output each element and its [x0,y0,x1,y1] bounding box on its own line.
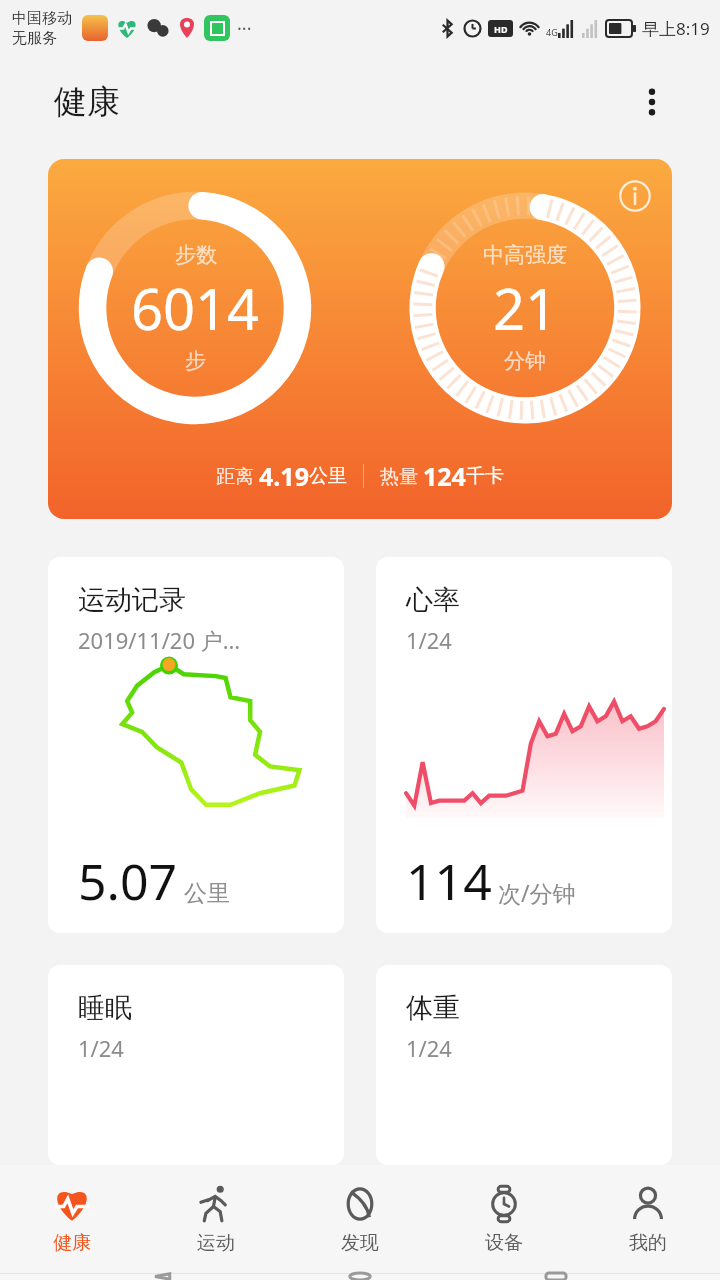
staticText: 中国移动 [12,9,72,28]
staticText: 5.07 [78,847,178,915]
staticText: 1/24 [406,1033,452,1063]
staticText: 早上8:19 [642,17,710,40]
button[interactable]: 设备 [432,1165,576,1273]
button[interactable]: 睡眠 [48,965,344,1165]
staticText: 千卡 [466,464,504,488]
staticText: 4G [546,26,558,38]
button[interactable]: 运动记录 [48,557,344,933]
staticText: 2019/11/20 户… [78,625,241,655]
staticText: 睡眠 [78,991,132,1025]
button[interactable]: 健康 [0,1165,144,1273]
staticText: 健康 [53,1231,91,1255]
staticText: 1/24 [78,1033,124,1063]
staticText: 分钟 [504,348,546,374]
staticText: 我的 [629,1231,667,1255]
button[interactable]: Info [612,173,658,219]
button[interactable]: 我的 [576,1165,720,1273]
staticText: 运动记录 [78,583,186,617]
button[interactable]: 运动 [144,1165,288,1273]
staticText: 心率 [406,583,460,617]
staticText: 21 [493,270,558,346]
staticText: 步数 [175,242,217,268]
button[interactable]: Home [328,1273,392,1280]
staticText: 健康 [54,81,120,123]
button[interactable]: 体重 [376,965,672,1165]
staticText: 步 [185,348,206,374]
button[interactable]: 发现 [288,1165,432,1273]
staticText: 发现 [341,1231,379,1255]
button[interactable]: Back [132,1273,196,1280]
staticText: 无服务 [12,29,57,48]
staticText: 距离 [216,463,259,489]
staticText: 124 [423,459,466,493]
staticText: 114 [406,847,492,915]
staticText: 热量 [380,463,423,489]
button[interactable]: More options [626,76,678,128]
staticText: 中高强度 [483,242,567,268]
staticText: 次/分钟 [498,877,576,908]
staticText: 6014 [131,270,260,346]
button[interactable]: 心率 [376,557,672,933]
staticText: 1/24 [406,625,452,655]
staticText: 公里 [309,464,347,488]
staticText: 4.19 [259,459,309,493]
button[interactable]: Info [48,159,672,519]
staticText: ··· [237,16,252,41]
staticText: 公里 [184,879,230,908]
staticText: 体重 [406,991,460,1025]
staticText: 运动 [197,1231,235,1255]
staticText: 设备 [485,1231,523,1255]
staticText: HD [494,23,508,35]
button[interactable]: Recents [524,1273,588,1280]
